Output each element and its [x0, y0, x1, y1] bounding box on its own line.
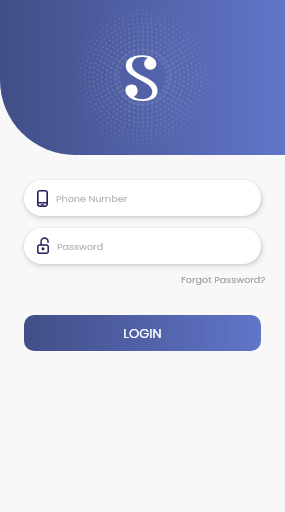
other: Phone number	[37, 190, 48, 207]
staticText: Password	[57, 240, 104, 253]
button[interactable]: Phone number	[24, 180, 261, 216]
button[interactable]: Forgot Password?	[179, 270, 268, 289]
button[interactable]: Password	[24, 228, 261, 264]
staticText: Forgot Password?	[181, 273, 266, 286]
button[interactable]: LOGIN	[24, 315, 261, 351]
staticText: Phone Number	[56, 192, 128, 205]
staticText: LOGIN	[123, 324, 162, 342]
other: Password	[37, 238, 49, 254]
